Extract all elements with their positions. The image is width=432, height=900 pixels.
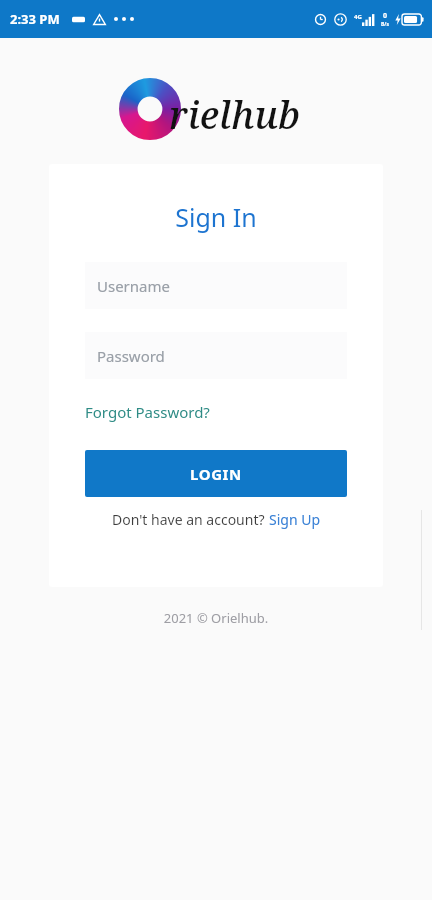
staticText: 2021 © Orielhub.: [0, 609, 432, 627]
button[interactable]: Username: [85, 262, 347, 309]
staticText: 0: [383, 11, 388, 21]
staticText: Username: [97, 276, 170, 296]
button[interactable]: Forgot Password?: [85, 400, 210, 424]
button[interactable]: LOGIN: [85, 450, 347, 497]
staticText: LOGIN: [190, 464, 242, 484]
button[interactable]: Sign Up: [269, 510, 321, 529]
staticText: Forgot Password?: [85, 402, 210, 422]
staticText: 2:33 PM: [10, 10, 60, 28]
staticText: Sign In: [85, 200, 347, 234]
staticText: Don't have an account?: [112, 510, 269, 529]
staticText: rielhub: [169, 88, 300, 140]
staticText: 4G: [354, 13, 362, 21]
staticText: Password: [97, 346, 165, 366]
staticText: Sign Up: [269, 510, 321, 529]
button[interactable]: Password: [85, 332, 347, 379]
staticText: B/s: [381, 21, 389, 28]
